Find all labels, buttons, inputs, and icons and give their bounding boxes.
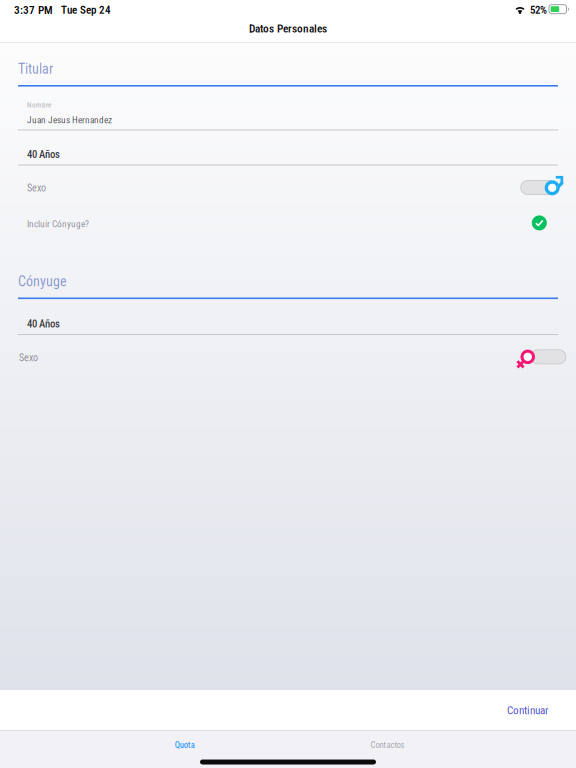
button[interactable] bbox=[0, 203, 576, 239]
staticText: 40 Años bbox=[27, 317, 60, 330]
staticText: Continuar bbox=[507, 704, 548, 717]
staticText: Sexo bbox=[27, 182, 46, 194]
button[interactable]: Quota bbox=[147, 733, 223, 757]
staticText: Cónyuge bbox=[18, 273, 67, 290]
staticText: 52% bbox=[530, 3, 547, 16]
staticText: Incluir Cónyuge? bbox=[27, 219, 89, 229]
staticText: Quota bbox=[175, 740, 195, 750]
button[interactable] bbox=[0, 336, 576, 372]
staticText: Datos Personales bbox=[249, 22, 327, 35]
staticText: Nombre bbox=[27, 101, 51, 109]
staticText: Sexo bbox=[19, 352, 38, 364]
staticText: 3:37 PM bbox=[14, 3, 53, 17]
staticText: Titular bbox=[18, 61, 53, 77]
button[interactable] bbox=[0, 166, 576, 202]
button[interactable]: Continuar bbox=[491, 694, 576, 727]
staticText: Tue Sep 24 bbox=[61, 3, 111, 16]
staticText: 40 Años bbox=[27, 148, 60, 160]
staticText: Juan Jesus Hernandez bbox=[27, 115, 112, 125]
button[interactable]: Contactos bbox=[349, 733, 425, 757]
staticText: Contactos bbox=[370, 740, 404, 750]
